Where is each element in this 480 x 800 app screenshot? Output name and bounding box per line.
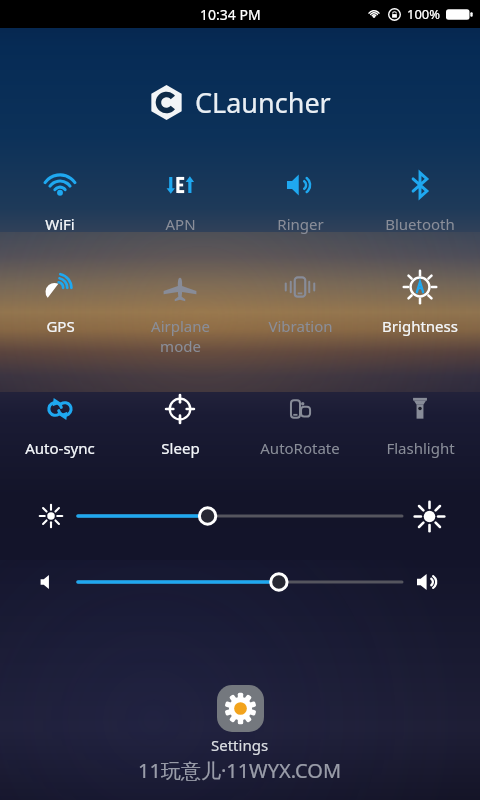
button[interactable]: WiFi bbox=[0, 161, 120, 237]
button[interactable]: Settings bbox=[0, 685, 480, 755]
staticText: APN bbox=[165, 214, 196, 234]
staticText: Sleep bbox=[161, 438, 200, 458]
staticText: Auto-sync bbox=[25, 438, 95, 458]
button[interactable]: Lower brightness bbox=[0, 495, 480, 537]
button[interactable]: AutoRotate bbox=[240, 385, 360, 461]
button[interactable]: Flashlight bbox=[360, 385, 480, 461]
other: Max volume bbox=[414, 567, 444, 597]
button[interactable]: APN bbox=[120, 161, 240, 237]
button[interactable]: Sleep bbox=[120, 385, 240, 461]
staticText: Bluetooth bbox=[385, 214, 455, 234]
other: Raise brightness bbox=[416, 503, 443, 530]
staticText: Vibration bbox=[268, 316, 333, 336]
button[interactable]: Auto-sync bbox=[0, 385, 120, 461]
staticText: Airplane mode bbox=[151, 316, 210, 356]
staticText: 100% bbox=[407, 5, 441, 23]
other: Lower brightness bbox=[40, 505, 62, 527]
staticText: CLauncher bbox=[195, 84, 331, 121]
button[interactable]: GPS bbox=[0, 263, 120, 339]
staticText: GPS bbox=[46, 316, 75, 336]
staticText: Brightness bbox=[382, 316, 458, 336]
staticText: 11玩意儿·11WYX.COM bbox=[138, 757, 342, 784]
button[interactable]: Mute bbox=[0, 561, 480, 603]
other: Mute bbox=[38, 569, 64, 595]
button[interactable]: Brightness bbox=[360, 263, 480, 339]
button[interactable]: Ringer bbox=[240, 161, 360, 237]
staticText: Flashlight bbox=[386, 438, 455, 458]
staticText: Settings bbox=[211, 735, 269, 755]
button[interactable]: Vibration bbox=[240, 263, 360, 339]
button[interactable]: Airplane mode bbox=[120, 263, 240, 359]
staticText: 10:34 PM bbox=[200, 5, 261, 24]
staticText: WiFi bbox=[45, 214, 75, 234]
button[interactable]: Bluetooth bbox=[360, 161, 480, 237]
staticText: Ringer bbox=[277, 214, 324, 234]
staticText: AutoRotate bbox=[260, 438, 340, 458]
